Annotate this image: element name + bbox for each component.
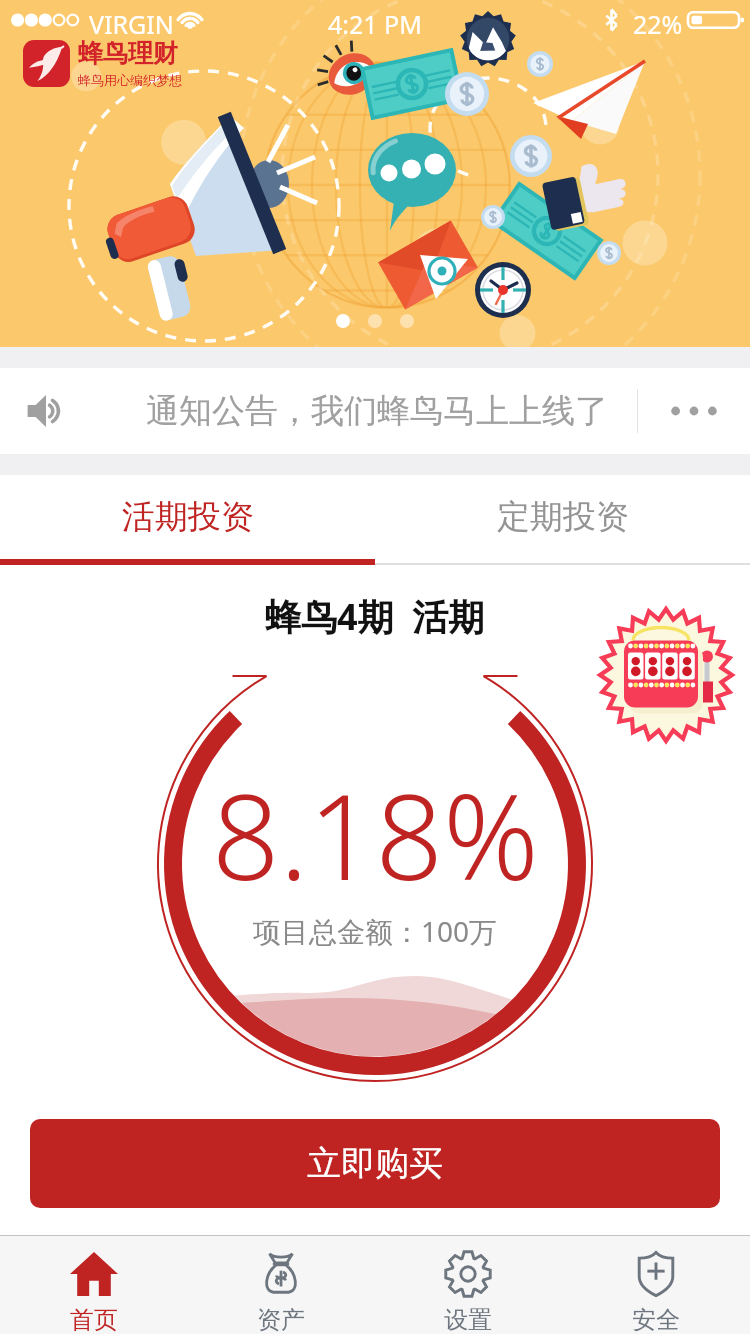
staticText: 安全 [632, 1305, 680, 1334]
button[interactable]: 定期投资 [375, 475, 750, 559]
button[interactable]: 设置 [374, 1236, 562, 1334]
staticText: 4:21 PM [328, 7, 422, 41]
staticText: 蜂鸟4期 活期 [265, 592, 485, 641]
button[interactable]: 活动奖励 [599, 608, 733, 742]
staticText: 22% [633, 7, 683, 41]
staticText: 活期投资 [122, 496, 254, 538]
button[interactable]: 立即购买 [30, 1119, 720, 1208]
staticText: VIRGIN [89, 7, 174, 41]
button[interactable]: 更多 [638, 368, 750, 454]
staticText: 设置 [444, 1305, 492, 1334]
staticText: 项目总金额：100万 [253, 912, 498, 950]
staticText: 通知公告，我们蜂鸟马上上线了 [146, 390, 608, 432]
button[interactable]: 资产 [187, 1236, 374, 1334]
staticText: 立即购买 [307, 1142, 443, 1185]
staticText: 资产 [257, 1305, 305, 1334]
staticText: 蜂鸟理财 [78, 38, 178, 69]
staticText: 8.18% [212, 754, 539, 915]
button[interactable]: 通知公告，我们蜂鸟马上上线了 [0, 368, 750, 454]
button[interactable]: 首页 [0, 1236, 187, 1334]
staticText: 定期投资 [497, 496, 629, 538]
staticText: 蜂鸟用心编织梦想 [78, 72, 182, 88]
button[interactable]: 活期投资 [0, 475, 375, 559]
button[interactable]: 安全 [562, 1236, 750, 1334]
staticText: 首页 [70, 1305, 118, 1334]
